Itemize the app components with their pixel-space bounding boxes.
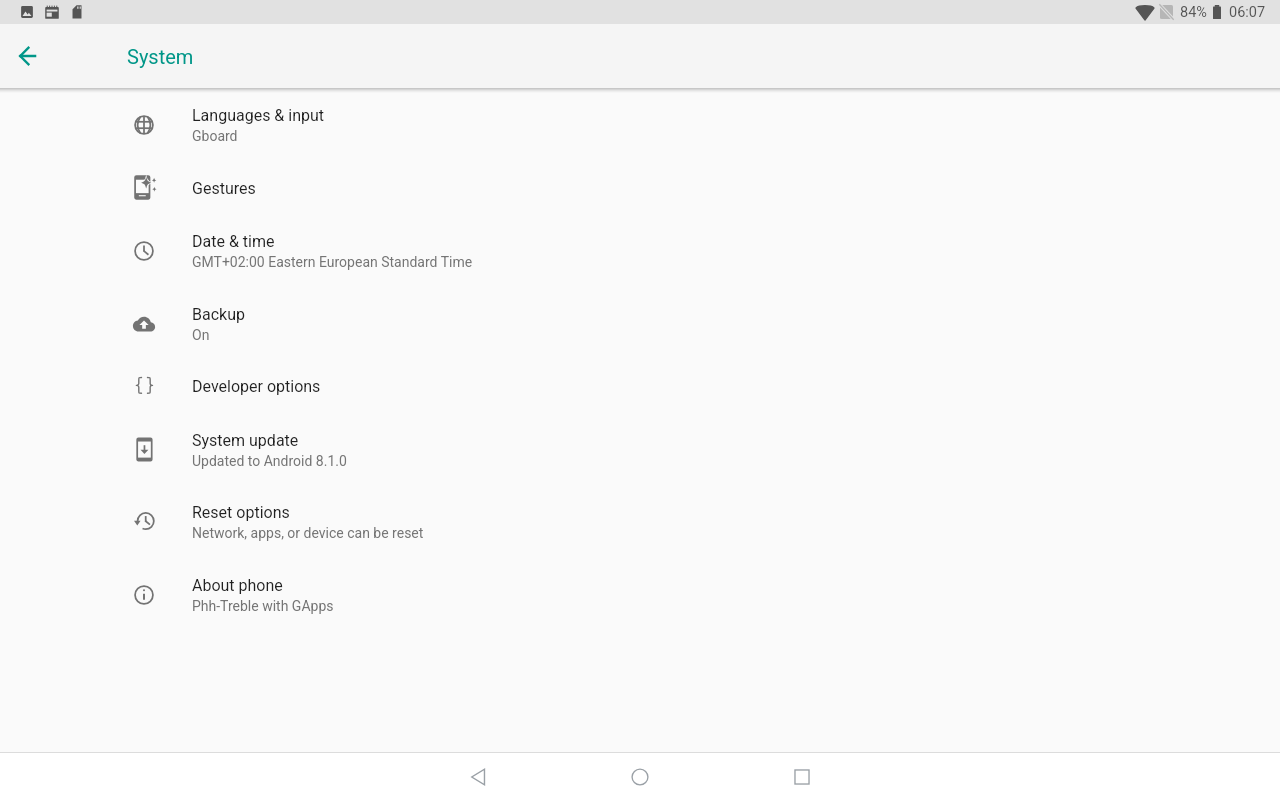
button[interactable]: Reset options bbox=[0, 485, 1280, 558]
staticText: About phone bbox=[192, 576, 283, 595]
staticText: System bbox=[127, 45, 194, 68]
staticText: Gestures bbox=[192, 179, 256, 198]
staticText: Date & time bbox=[192, 232, 275, 251]
staticText: Backup bbox=[192, 305, 245, 324]
staticText: Updated to Android 8.1.0 bbox=[192, 453, 347, 469]
button[interactable]: Date & time bbox=[0, 214, 1280, 287]
staticText: Reset options bbox=[192, 503, 290, 522]
button[interactable]: System update bbox=[0, 413, 1280, 486]
button[interactable]: Home bbox=[616, 753, 664, 800]
button[interactable]: Navigate up bbox=[4, 32, 52, 80]
staticText: Gboard bbox=[192, 128, 238, 144]
button[interactable]: About phone bbox=[0, 558, 1280, 631]
button[interactable]: Back bbox=[454, 753, 502, 800]
button[interactable]: Recent apps bbox=[778, 753, 826, 800]
staticText: Phh-Treble with GApps bbox=[192, 598, 334, 614]
button[interactable]: Gestures bbox=[0, 161, 1280, 214]
staticText: System update bbox=[192, 431, 299, 450]
staticText: 84% bbox=[1180, 4, 1207, 21]
staticText: Developer options bbox=[192, 377, 321, 396]
button[interactable]: Languages & input bbox=[0, 88, 1280, 161]
staticText: 06:07 bbox=[1229, 4, 1266, 21]
staticText: GMT+02:00 Eastern European Standard Time bbox=[192, 254, 473, 270]
staticText: Network, apps, or device can be reset bbox=[192, 525, 424, 541]
staticText: On bbox=[192, 327, 210, 343]
button[interactable]: Developer options bbox=[0, 359, 1280, 412]
button[interactable]: Backup bbox=[0, 287, 1280, 360]
staticText: Languages & input bbox=[192, 106, 325, 125]
